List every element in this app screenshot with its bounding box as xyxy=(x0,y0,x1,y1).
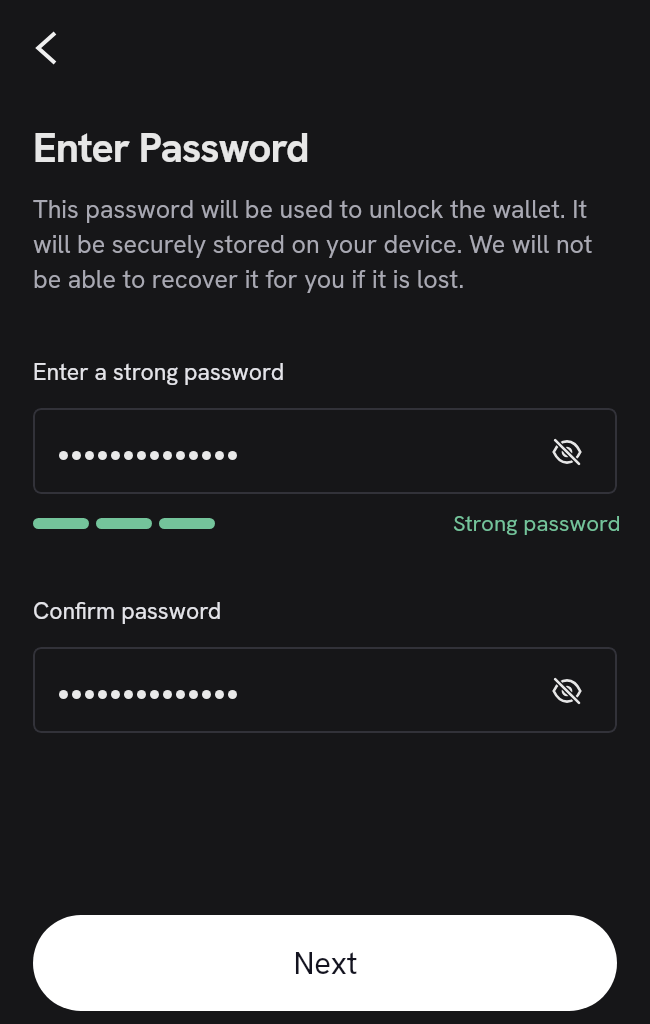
staticText: Enter Password xyxy=(33,127,309,173)
button[interactable]: Show password xyxy=(33,647,617,733)
staticText: Enter a strong password xyxy=(33,359,285,387)
staticText: This password will be used to unlock the… xyxy=(33,192,603,297)
button[interactable]: Show password xyxy=(545,669,589,713)
staticText: Confirm password xyxy=(33,598,222,626)
staticText: Strong password xyxy=(453,511,621,537)
button[interactable]: Next xyxy=(33,915,617,1011)
button[interactable]: Show password xyxy=(545,430,589,474)
button[interactable]: Back xyxy=(28,24,76,72)
staticText: Next xyxy=(293,949,358,981)
button[interactable]: Show password xyxy=(33,408,617,494)
